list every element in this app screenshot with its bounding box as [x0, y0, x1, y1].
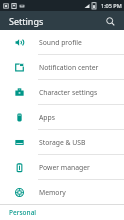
button[interactable]: Memory	[0, 180, 124, 204]
button[interactable]: Power manager	[0, 155, 124, 179]
staticText: Memory	[39, 188, 66, 197]
staticText: Apps	[39, 113, 55, 122]
staticText: Storage & USB	[39, 138, 86, 147]
staticText: Character settings	[39, 88, 98, 97]
staticText: 1:05 PM	[101, 2, 122, 9]
button[interactable]: Notification center	[0, 55, 124, 79]
staticText: Personal	[9, 208, 37, 217]
button[interactable]: Storage & USB	[0, 130, 124, 154]
button[interactable]: Character settings	[0, 80, 124, 104]
button[interactable]: Sound profile	[0, 30, 124, 54]
staticText: Notification center	[39, 63, 99, 72]
button[interactable]: Search	[102, 13, 118, 29]
staticText: Settings	[9, 15, 44, 27]
staticText: Sound profile	[39, 38, 82, 47]
staticText: Power manager	[39, 163, 90, 172]
button[interactable]: Apps	[0, 105, 124, 129]
